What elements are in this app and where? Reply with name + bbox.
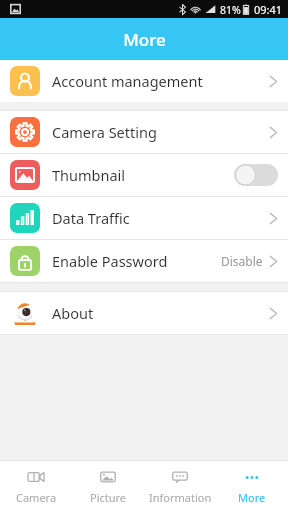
button[interactable]: Enable Password [0, 240, 288, 282]
button[interactable]: Camera Setting [0, 111, 288, 153]
button[interactable]: Picture [72, 460, 144, 512]
staticText: About [52, 303, 94, 323]
button[interactable]: Camera [0, 460, 72, 512]
staticText: More [238, 490, 266, 505]
button[interactable]: Thumbnail toggle [234, 163, 278, 187]
staticText: Enable Password [52, 251, 168, 271]
staticText: 81% [220, 3, 241, 17]
staticText: Disable [221, 253, 263, 269]
staticText: Account management [52, 71, 203, 91]
staticText: Data Traffic [52, 208, 130, 228]
button[interactable]: Account management [0, 60, 288, 102]
staticText: Camera [16, 490, 57, 505]
button[interactable]: Information [144, 460, 216, 512]
staticText: Thumbnail [52, 165, 126, 185]
button[interactable]: More [216, 460, 288, 512]
staticText: Information [149, 490, 212, 505]
staticText: 09:41 [254, 2, 283, 17]
staticText: Picture [90, 490, 127, 505]
staticText: Camera Setting [52, 122, 157, 142]
button[interactable]: Data Traffic [0, 197, 288, 239]
staticText: More [123, 28, 166, 51]
button[interactable]: About [0, 292, 288, 334]
button[interactable]: Thumbnail [0, 154, 288, 196]
